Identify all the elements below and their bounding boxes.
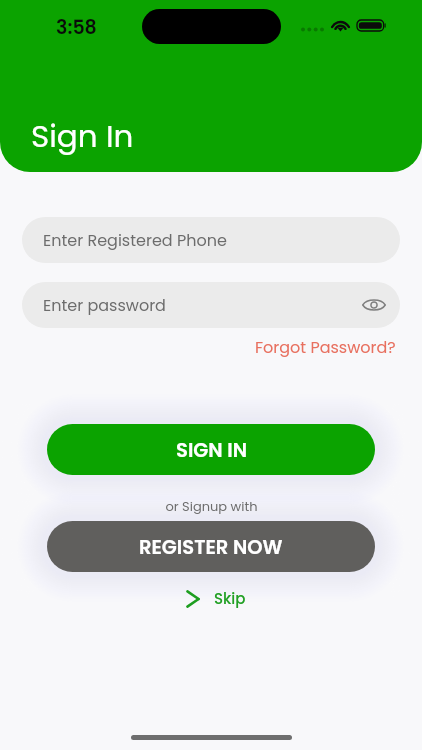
staticText: Sign In [31,114,134,157]
button[interactable]: Enter password [22,282,400,328]
button[interactable]: SIGN IN [47,424,375,475]
staticText: Enter Registered Phone [43,229,227,251]
staticText: Skip [214,588,246,609]
staticText: REGISTER NOW [139,534,283,561]
staticText: or Signup with [165,497,258,515]
button[interactable]: Show password [356,287,392,323]
staticText: Forgot Password? [255,336,396,358]
button[interactable]: REGISTER NOW [47,521,375,572]
button[interactable]: Enter Registered Phone [22,217,400,263]
staticText: 3:58 [56,14,97,41]
staticText: SIGN IN [176,437,247,464]
button[interactable]: Forgot Password? [251,333,400,361]
staticText: Enter password [43,294,166,316]
button[interactable]: Skip [178,585,254,612]
